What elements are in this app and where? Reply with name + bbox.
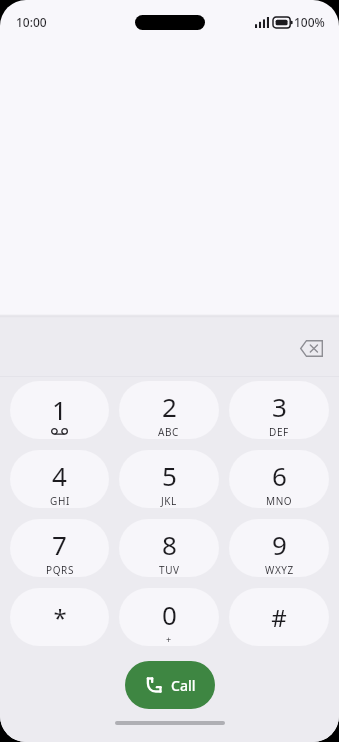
staticText: 7	[52, 527, 67, 562]
button[interactable]: 6	[229, 450, 329, 508]
staticText: GHI	[50, 494, 70, 508]
button[interactable]: Backspace	[289, 326, 333, 370]
staticText: ABC	[158, 425, 180, 439]
staticText: MNO	[266, 494, 293, 508]
staticText: WXYZ	[265, 563, 294, 577]
staticText: 6	[272, 458, 287, 493]
button[interactable]: 3	[229, 381, 329, 439]
staticText: Call	[171, 676, 196, 695]
staticText: JKL	[161, 494, 177, 508]
button[interactable]: 4	[10, 450, 109, 508]
staticText: 3	[272, 389, 287, 424]
button[interactable]: #	[229, 588, 329, 646]
button[interactable]: 8	[119, 519, 219, 577]
button[interactable]: 1	[10, 381, 109, 439]
staticText: #	[271, 601, 287, 634]
staticText: DEF	[269, 425, 289, 439]
staticText: PQRS	[46, 563, 74, 577]
staticText: TUV	[159, 563, 180, 577]
staticText: 2	[162, 389, 177, 424]
button[interactable]: 5	[119, 450, 219, 508]
button[interactable]: 9	[229, 519, 329, 577]
staticText: +	[166, 633, 172, 645]
staticText: 9	[272, 527, 287, 562]
button[interactable]: Call	[125, 661, 215, 709]
staticText: 10:00	[16, 14, 47, 30]
staticText: *	[53, 601, 67, 634]
staticText: 4	[52, 458, 67, 493]
staticText: 5	[162, 458, 177, 493]
staticText: 0	[162, 597, 177, 632]
button[interactable]: 2	[119, 381, 219, 439]
button[interactable]: 0	[119, 588, 219, 646]
button[interactable]: 7	[10, 519, 109, 577]
staticText: 8	[162, 527, 177, 562]
staticText: 100%	[294, 14, 325, 30]
staticText: 1	[52, 392, 67, 427]
button[interactable]: *	[10, 588, 109, 646]
